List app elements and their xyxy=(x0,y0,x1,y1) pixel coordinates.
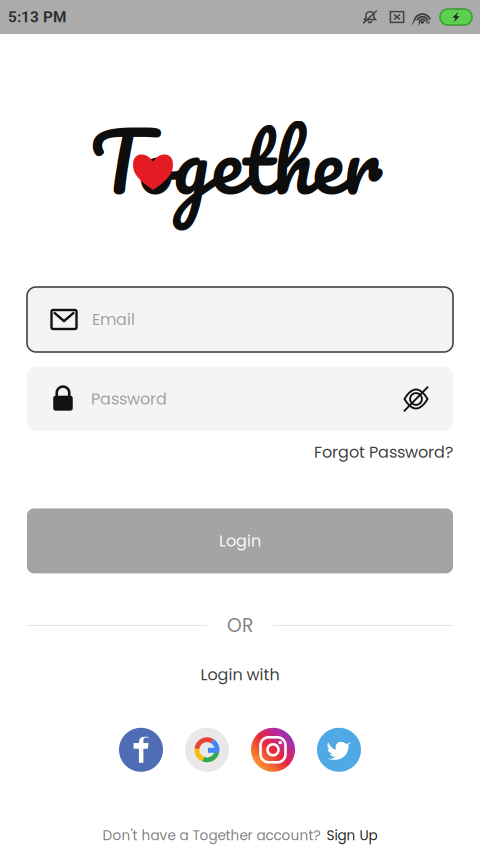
button[interactable]: Forgot Password? xyxy=(314,441,453,463)
staticText: Password xyxy=(91,388,167,410)
button[interactable]: Email xyxy=(27,287,453,352)
button[interactable]: Password xyxy=(27,367,453,431)
staticText: Together xyxy=(90,92,382,230)
button[interactable]: Sign Up xyxy=(326,826,377,845)
button[interactable]: Login xyxy=(27,508,453,573)
staticText: Login with xyxy=(200,663,279,686)
staticText: Login xyxy=(219,530,261,552)
staticText: Sign Up xyxy=(326,826,377,845)
staticText: Email xyxy=(92,308,135,331)
staticText: Forgot Password? xyxy=(314,441,453,463)
button[interactable]: Log in with Instagram xyxy=(251,728,295,772)
staticText: OR xyxy=(227,612,253,638)
button[interactable]: Log in with Twitter xyxy=(317,728,361,772)
staticText: Don't have a Together account? xyxy=(102,826,320,845)
button[interactable]: Log in with Google xyxy=(185,728,229,772)
staticText: 5:13 PM xyxy=(8,8,66,26)
button[interactable]: Log in with Facebook xyxy=(119,728,163,772)
